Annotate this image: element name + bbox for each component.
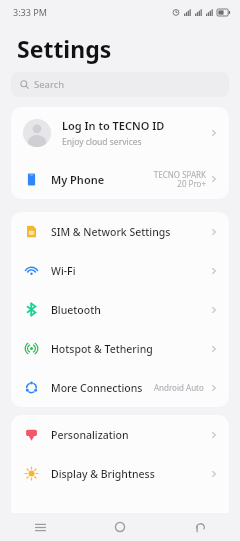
staticText: Log In to TECNO ID <box>62 118 165 133</box>
button[interactable]: Recent apps <box>0 513 80 541</box>
button[interactable]: My Phone <box>11 159 229 199</box>
staticText: Wi-Fi <box>51 264 209 278</box>
button[interactable]: Search <box>11 72 229 97</box>
staticText: Search <box>34 78 65 91</box>
button[interactable]: SIM & Network Settings <box>11 212 229 251</box>
button[interactable]: Log In to TECNO ID <box>11 107 229 159</box>
staticText: Enjoy cloud services <box>62 136 142 148</box>
button[interactable]: Hotspot & Tethering <box>11 329 229 368</box>
button[interactable]: Home <box>80 513 160 541</box>
button[interactable]: Wi-Fi <box>11 251 229 290</box>
button[interactable]: More Connections <box>11 368 229 407</box>
staticText: Settings <box>17 33 112 64</box>
staticText: Personalization <box>51 428 209 442</box>
staticText: More Connections <box>51 381 154 395</box>
staticText: Android Auto <box>154 382 204 393</box>
staticText: SIM & Network Settings <box>51 225 209 239</box>
staticText: 3:33 PM <box>13 6 47 18</box>
staticText: Hotspot & Tethering <box>51 342 209 356</box>
staticText: Bluetooth <box>51 303 209 317</box>
button[interactable]: Back <box>160 513 240 541</box>
button[interactable]: Display & Brightness <box>11 454 229 493</box>
staticText: My Phone <box>51 172 148 187</box>
staticText: Display & Brightness <box>51 467 209 481</box>
button[interactable]: Personalization <box>11 415 229 454</box>
button[interactable]: Bluetooth <box>11 290 229 329</box>
staticText: TECNO SPARK 20 Pro+ <box>148 169 206 190</box>
